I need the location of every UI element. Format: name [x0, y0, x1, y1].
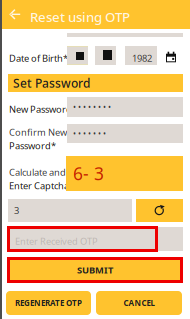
staticText: Enter Received OTP: [15, 235, 98, 247]
staticText: Reset using OTP: [30, 8, 130, 26]
staticText: REGENERATE OTP: [15, 298, 82, 308]
staticText: 6- 3: [73, 162, 104, 185]
staticText: Confirm New: [9, 126, 67, 138]
staticText: 1982: [132, 52, 152, 64]
button[interactable]: Refresh captcha: [136, 199, 183, 222]
staticText: Set Password: [13, 75, 90, 91]
staticText: Enter Captcha*: [9, 179, 74, 192]
button[interactable]: REGENERATE OTP: [6, 291, 91, 315]
staticText: Calculate and: [9, 166, 66, 178]
button[interactable]: SUBMIT: [7, 257, 183, 283]
button[interactable]: CANCEL: [96, 291, 182, 315]
staticText: • • • • • • •: [73, 128, 106, 139]
staticText: SUBMIT: [77, 264, 113, 276]
staticText: Enter Received OTP: [15, 235, 98, 247]
staticText: New Password*: [9, 103, 77, 115]
staticText: 3: [14, 204, 19, 217]
staticText: CANCEL: [123, 298, 154, 308]
staticText: Date of Birth*: [9, 52, 68, 64]
button[interactable]: Back: [3, 0, 27, 29]
staticText: • • • • • • • •: [73, 102, 111, 112]
button[interactable]: Pick date: [163, 48, 179, 64]
staticText: Password*: [9, 139, 56, 152]
